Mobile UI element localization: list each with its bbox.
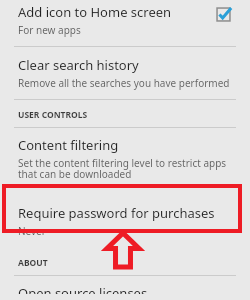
staticText: Set the content filtering level to restr…	[18, 156, 240, 181]
staticText: For new apps	[18, 23, 81, 37]
button[interactable]: Clear search history	[0, 47, 250, 99]
staticText: Never	[18, 224, 46, 238]
staticText: Content filtering	[18, 136, 119, 154]
button[interactable]: Content filtering	[0, 128, 250, 191]
button[interactable]: Add icon to Home screen checkbox	[215, 6, 232, 23]
staticText: ABOUT	[18, 257, 48, 269]
staticText: Require password for purchases	[18, 204, 215, 222]
staticText: Remove all the searches you have perform…	[18, 76, 230, 90]
staticText: Open source licenses	[18, 284, 148, 294]
staticText: USER CONTROLS	[18, 109, 88, 121]
button[interactable]: Require password for purchases	[0, 196, 250, 249]
button[interactable]: Open source licenses	[0, 276, 250, 300]
button[interactable]: Add icon to Home screen	[0, 0, 250, 46]
staticText: Clear search history	[18, 56, 139, 74]
staticText: Add icon to Home screen	[18, 3, 172, 21]
